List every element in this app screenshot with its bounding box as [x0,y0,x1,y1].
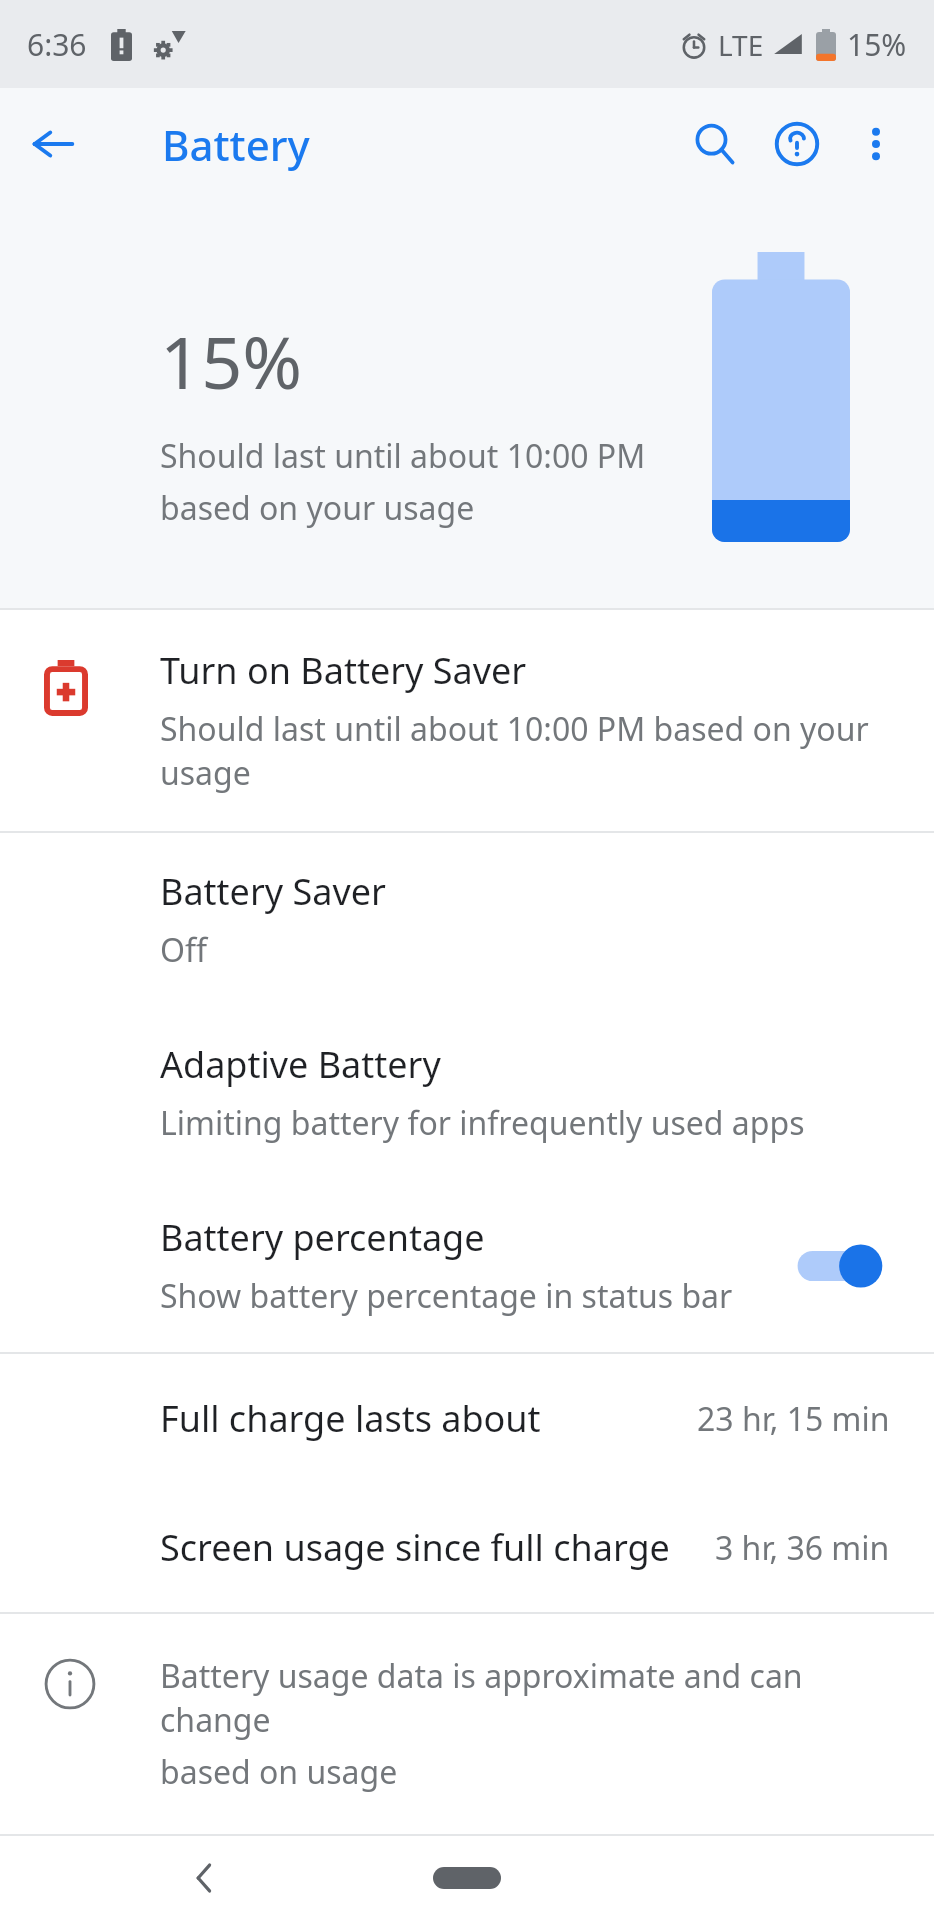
button[interactable]: Screen usage since full charge [0,1483,934,1612]
staticText: 23 hr, 15 min [697,1397,890,1441]
button[interactable]: Back [22,113,84,175]
staticText: 6:36 [27,24,87,65]
staticText: 15% [847,24,907,65]
staticText: Should last until about 10:00 PM based o… [160,707,890,795]
staticText: 3 hr, 36 min [715,1526,890,1570]
button[interactable]: More options [838,106,914,182]
staticText: Turn on Battery Saver [160,646,527,695]
staticText: Show battery percentage in status bar [160,1274,733,1318]
staticText: based on usage [160,1750,398,1794]
staticText: Screen usage since full charge [160,1523,715,1572]
button[interactable]: Full charge lasts about [0,1354,934,1483]
staticText: Off [160,928,208,972]
button[interactable]: Search [674,103,756,185]
button[interactable]: Turn on Battery Saver [0,610,934,831]
button[interactable]: Back [162,1836,248,1920]
staticText: Full charge lasts about [160,1394,697,1443]
button[interactable]: Home [397,1854,537,1902]
staticText: based on your usage [160,486,475,530]
staticText: Should last until about 10:00 PM [160,434,646,478]
staticText: Adaptive Battery [160,1040,441,1089]
staticText: Battery Saver [160,867,386,916]
staticText: Limiting battery for infrequently used a… [160,1101,805,1145]
button[interactable]: Help [756,103,838,185]
button[interactable]: Battery percentage toggle [792,1230,904,1302]
button[interactable]: Battery Saver [0,833,934,1006]
staticText: LTE [718,26,764,64]
button[interactable]: Adaptive Battery [0,1006,934,1179]
staticText: 15% [160,312,303,410]
button[interactable]: Battery percentage [0,1179,934,1352]
staticText: Battery percentage [160,1213,485,1262]
staticText: Battery usage data is approximate and ca… [160,1654,890,1742]
staticText: Battery [162,116,310,173]
